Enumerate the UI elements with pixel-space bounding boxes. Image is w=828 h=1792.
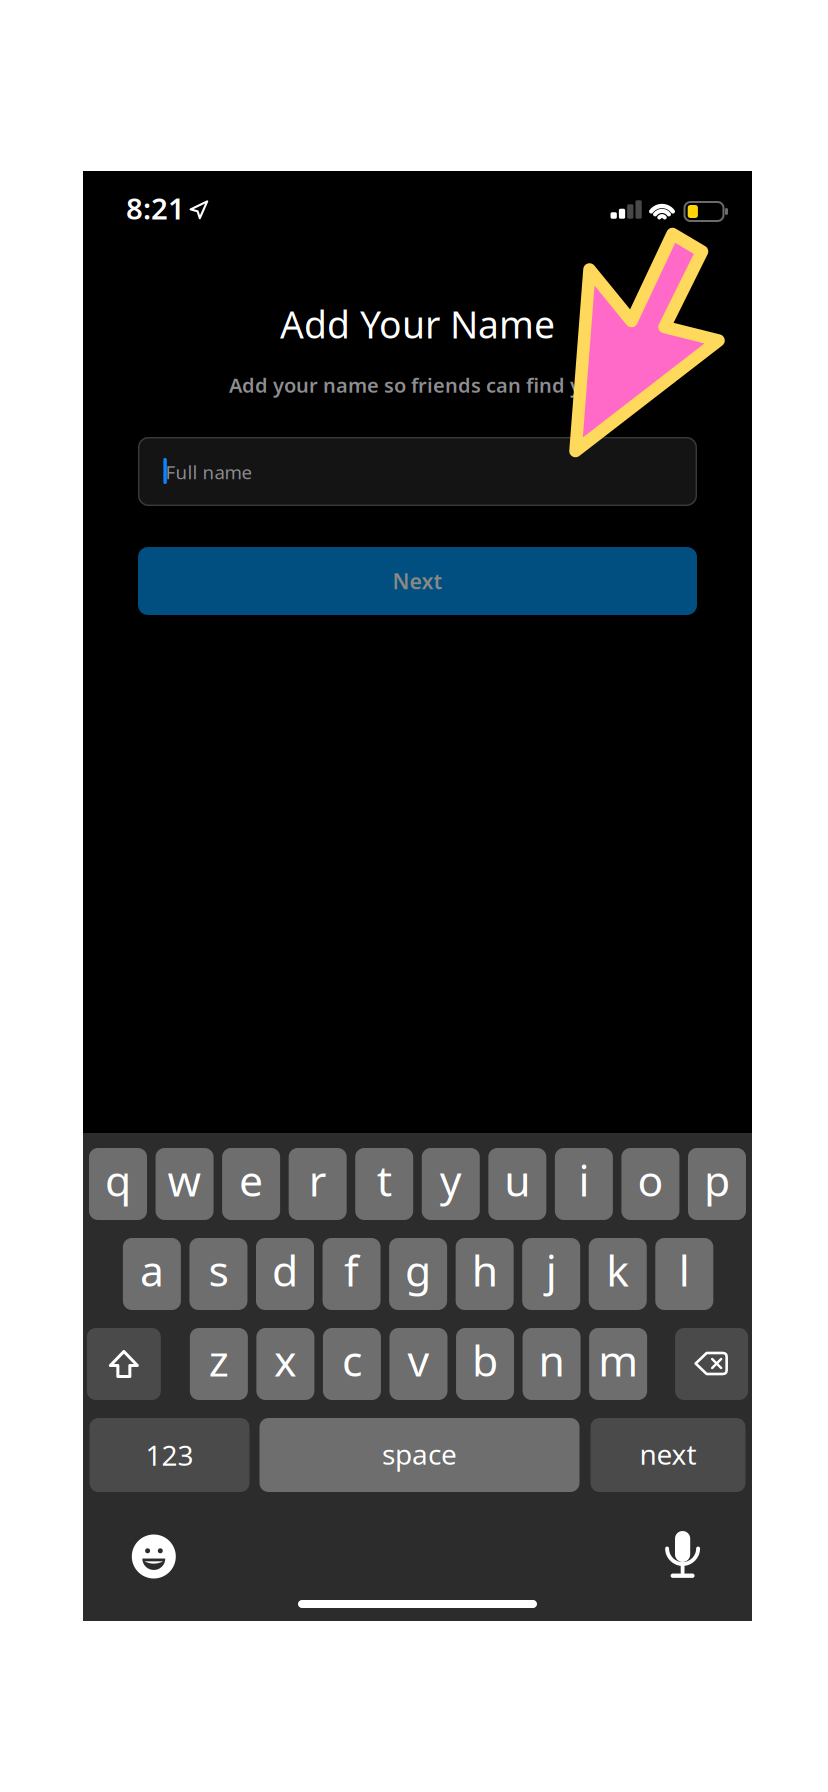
staticText: s bbox=[208, 1242, 228, 1298]
button[interactable]: l bbox=[655, 1238, 713, 1310]
button[interactable]: next bbox=[590, 1418, 745, 1492]
button[interactable]: h bbox=[456, 1238, 514, 1310]
staticText: 123 bbox=[145, 1436, 193, 1474]
staticText: u bbox=[504, 1152, 530, 1208]
staticText: l bbox=[679, 1242, 690, 1298]
button[interactable]: p bbox=[688, 1148, 746, 1220]
button[interactable]: u bbox=[488, 1148, 546, 1220]
staticText: d bbox=[272, 1242, 298, 1298]
staticText: j bbox=[546, 1242, 557, 1298]
staticText: f bbox=[344, 1242, 359, 1298]
staticText: a bbox=[140, 1242, 164, 1298]
button[interactable]: d bbox=[256, 1238, 314, 1310]
staticText: Add Your Name bbox=[280, 299, 555, 349]
staticText: Next bbox=[392, 567, 442, 595]
button[interactable]: s bbox=[189, 1238, 247, 1310]
staticText: h bbox=[472, 1242, 498, 1298]
button[interactable]: g bbox=[389, 1238, 447, 1310]
button[interactable]: m bbox=[589, 1328, 647, 1400]
button[interactable]: j bbox=[522, 1238, 580, 1310]
staticText: t bbox=[377, 1152, 392, 1208]
button[interactable]: b bbox=[456, 1328, 514, 1400]
button[interactable]: Next bbox=[138, 547, 697, 615]
button[interactable]: r bbox=[289, 1148, 347, 1220]
button[interactable]: y bbox=[422, 1148, 480, 1220]
staticText: i bbox=[578, 1152, 589, 1208]
staticText: o bbox=[637, 1152, 663, 1208]
button[interactable]: z bbox=[190, 1328, 248, 1400]
button[interactable]: e bbox=[222, 1148, 280, 1220]
button[interactable]: space bbox=[259, 1418, 579, 1492]
button[interactable]: 123 bbox=[89, 1418, 249, 1492]
staticText: Add your name so friends can find you bbox=[229, 372, 606, 398]
staticText: m bbox=[598, 1332, 638, 1388]
button[interactable]: a bbox=[123, 1238, 181, 1310]
staticText: z bbox=[209, 1332, 229, 1388]
staticText: next bbox=[639, 1435, 696, 1473]
button[interactable]: q bbox=[89, 1148, 147, 1220]
button[interactable]: c bbox=[323, 1328, 381, 1400]
button[interactable]: v bbox=[389, 1328, 447, 1400]
staticText: e bbox=[239, 1152, 263, 1208]
button[interactable]: i bbox=[555, 1148, 613, 1220]
button[interactable]: Emoji keyboard bbox=[132, 1534, 176, 1578]
button[interactable]: Shift bbox=[87, 1328, 161, 1400]
staticText: k bbox=[606, 1242, 629, 1298]
button[interactable]: n bbox=[523, 1328, 581, 1400]
button[interactable]: Delete bbox=[675, 1328, 748, 1400]
button[interactable]: k bbox=[589, 1238, 647, 1310]
staticText: g bbox=[405, 1242, 431, 1298]
staticText: r bbox=[309, 1152, 327, 1208]
staticText: n bbox=[539, 1332, 565, 1388]
staticText: c bbox=[342, 1332, 362, 1388]
button[interactable]: x bbox=[256, 1328, 314, 1400]
button[interactable]: t bbox=[355, 1148, 413, 1220]
staticText: b bbox=[472, 1332, 498, 1388]
staticText: x bbox=[274, 1332, 297, 1388]
staticText: space bbox=[382, 1435, 457, 1473]
staticText: y bbox=[440, 1152, 462, 1208]
staticText: Full name bbox=[166, 460, 253, 484]
button[interactable]: w bbox=[156, 1148, 214, 1220]
staticText: v bbox=[407, 1332, 429, 1388]
button[interactable]: f bbox=[322, 1238, 380, 1310]
staticText: q bbox=[105, 1152, 131, 1208]
button[interactable]: Dictate bbox=[665, 1531, 701, 1581]
staticText: p bbox=[704, 1152, 730, 1208]
staticText: 8:21 bbox=[126, 188, 185, 227]
button[interactable]: o bbox=[621, 1148, 679, 1220]
staticText: w bbox=[168, 1152, 202, 1208]
